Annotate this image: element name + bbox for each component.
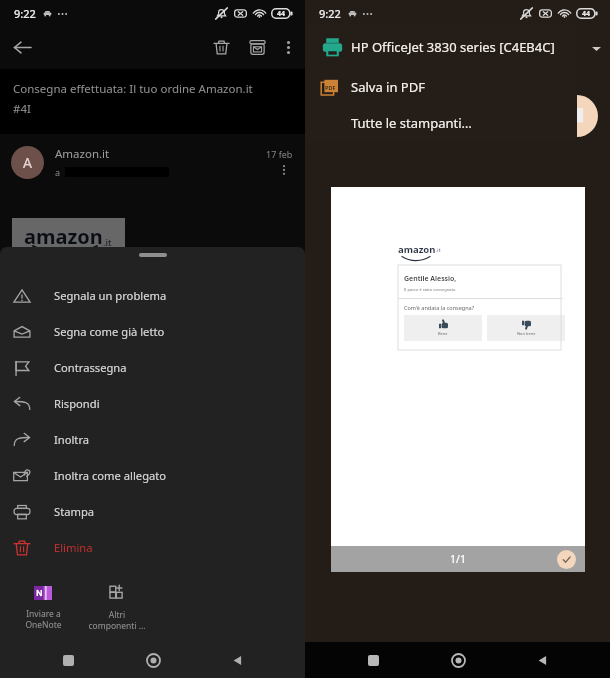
staticText: Tutte le stampanti… <box>351 114 472 132</box>
button[interactable]: Message options <box>275 161 293 179</box>
button[interactable]: Segnala un problema <box>0 277 305 313</box>
button[interactable]: Back <box>5 30 39 64</box>
staticText: HP OfficeJet 3830 series [C4EB4C] <box>351 38 555 56</box>
staticText: Salva in PDF <box>351 78 425 96</box>
staticText: amazon <box>24 223 103 250</box>
staticText: #4I <box>13 101 31 117</box>
button[interactable]: Segna come già letto <box>0 313 305 349</box>
staticText: Gentile Alessio, <box>404 274 457 284</box>
button[interactable]: Archive <box>240 30 274 64</box>
staticText: Il pacco è stato consegnato. <box>404 287 457 292</box>
staticText: 1/1 <box>450 552 466 566</box>
button[interactable]: Print <box>556 95 598 137</box>
staticText: .it <box>103 236 112 248</box>
staticText: Altri componenti … <box>88 609 146 631</box>
staticText: Contrassegna <box>54 360 127 375</box>
staticText: Elimina <box>54 540 93 555</box>
button[interactable]: Elimina <box>0 529 305 565</box>
button[interactable]: Altri componenti … <box>82 577 152 631</box>
staticText: 44 <box>277 9 286 19</box>
button[interactable]: Stampa <box>0 493 305 529</box>
button[interactable]: Tutte le stampanti… <box>307 106 577 140</box>
staticText: Com'è andata la consegna? <box>404 304 475 311</box>
button[interactable]: HP OfficeJet 3830 series [C4EB4C] <box>307 26 577 68</box>
button[interactable]: Non bene <box>487 315 565 341</box>
staticText: 9:22 <box>319 6 341 21</box>
button[interactable]: Expand printer list <box>584 36 608 60</box>
staticText: 44 <box>582 9 591 19</box>
button[interactable]: More options <box>272 31 304 63</box>
button[interactable]: Home <box>441 643 475 677</box>
button[interactable]: Bene <box>404 315 482 341</box>
button[interactable]: Home <box>136 643 170 677</box>
staticText: Consegna effettuata: Il tuo ordine Amazo… <box>13 81 253 97</box>
button[interactable]: Inoltra <box>0 421 305 457</box>
staticText: 9:22 <box>14 6 36 21</box>
button[interactable]: Confirm <box>557 550 576 569</box>
staticText: a <box>55 166 61 178</box>
button[interactable]: Recents <box>51 643 85 677</box>
staticText: Stampa <box>54 504 95 519</box>
staticText: Amazon.it <box>55 146 110 162</box>
staticText: Inoltra <box>54 432 90 447</box>
button[interactable]: Recents <box>356 643 390 677</box>
staticText: Segnala un problema <box>54 288 167 303</box>
staticText: Segna come già letto <box>54 324 165 339</box>
button[interactable]: Inoltra come allegato <box>0 457 305 493</box>
button[interactable]: Rispondi <box>0 385 305 421</box>
button[interactable]: PDF <box>307 68 577 106</box>
button[interactable]: Inviare a OneNote <box>8 577 78 630</box>
staticText: 17 feb <box>266 148 293 160</box>
button[interactable]: Contrassegna <box>0 349 305 385</box>
staticText: Inoltra come allegato <box>54 468 167 483</box>
staticText: amazon <box>398 243 436 256</box>
staticText: Rispondi <box>54 396 100 411</box>
staticText: Inviare a OneNote <box>25 608 62 630</box>
button[interactable]: Delete <box>204 30 238 64</box>
staticText: A <box>23 153 32 172</box>
staticText: Non bene <box>517 331 536 336</box>
button[interactable]: Back <box>525 643 559 677</box>
button[interactable]: Back <box>220 643 254 677</box>
staticText: .it <box>436 247 441 254</box>
staticText: PDF <box>325 84 336 91</box>
staticText: Bene <box>438 331 448 336</box>
